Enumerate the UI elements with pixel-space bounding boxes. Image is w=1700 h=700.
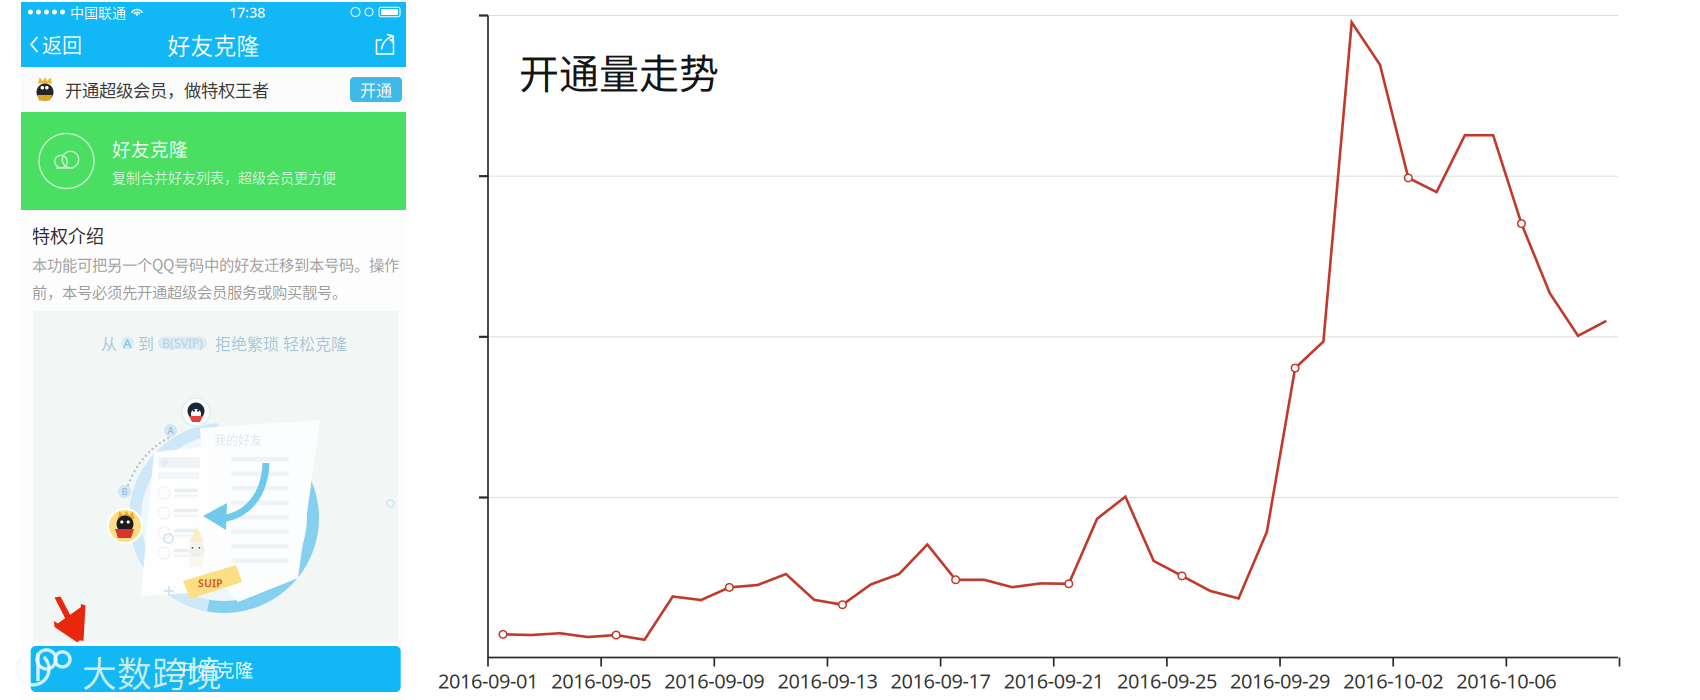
staticText: 复制合并好友列表，超级会员更方便	[112, 167, 336, 187]
staticText: 2016-09-29	[1230, 667, 1330, 694]
staticText: B	[121, 485, 127, 498]
staticText: 2016-09-13	[777, 667, 877, 694]
staticText: A	[167, 424, 173, 437]
staticText: 本功能可把另一个QQ号码中的好友迁移到本号码。操作	[32, 253, 399, 275]
staticText: 2016-09-21	[1004, 667, 1104, 694]
staticText: 开通量走势	[519, 42, 719, 100]
staticText: 从	[101, 331, 117, 355]
staticText: B(SVIP)	[162, 335, 203, 351]
staticText: 2016-09-17	[891, 667, 991, 694]
staticText: 好友克隆	[112, 135, 188, 162]
button[interactable]: 开始克隆	[31, 646, 401, 692]
staticText: 我的好友	[214, 431, 262, 448]
staticText: 大数跨境	[82, 647, 222, 697]
staticText: 2016-10-02	[1343, 667, 1443, 694]
staticText: 中国联通	[70, 2, 126, 22]
staticText: 17:38	[229, 2, 265, 22]
staticText: A	[123, 334, 132, 352]
staticText: 到	[138, 331, 154, 355]
staticText: 2016-09-05	[551, 667, 651, 694]
button[interactable]: 返回	[21, 22, 90, 67]
button[interactable]: 分享	[364, 22, 406, 67]
staticText: SUIP	[198, 576, 223, 590]
button[interactable]: 开通	[350, 77, 402, 102]
staticText: 2016-09-01	[438, 667, 538, 694]
staticText: 拒绝繁琐 轻松克隆	[215, 331, 347, 355]
staticText: 2016-09-25	[1117, 667, 1217, 694]
staticText: 前，本号必须先开通超级会员服务或购买靓号。	[32, 280, 347, 302]
staticText: 返回	[42, 30, 82, 59]
staticText: 开通	[360, 78, 392, 101]
staticText: 开通超级会员，做特权王者	[65, 77, 269, 102]
staticText: 开始克隆	[178, 655, 254, 682]
staticText: 好友克隆	[167, 28, 259, 61]
staticText: 特权介绍	[32, 222, 104, 248]
staticText: 2016-09-09	[664, 667, 764, 694]
staticText: 2016-10-06	[1456, 667, 1556, 694]
